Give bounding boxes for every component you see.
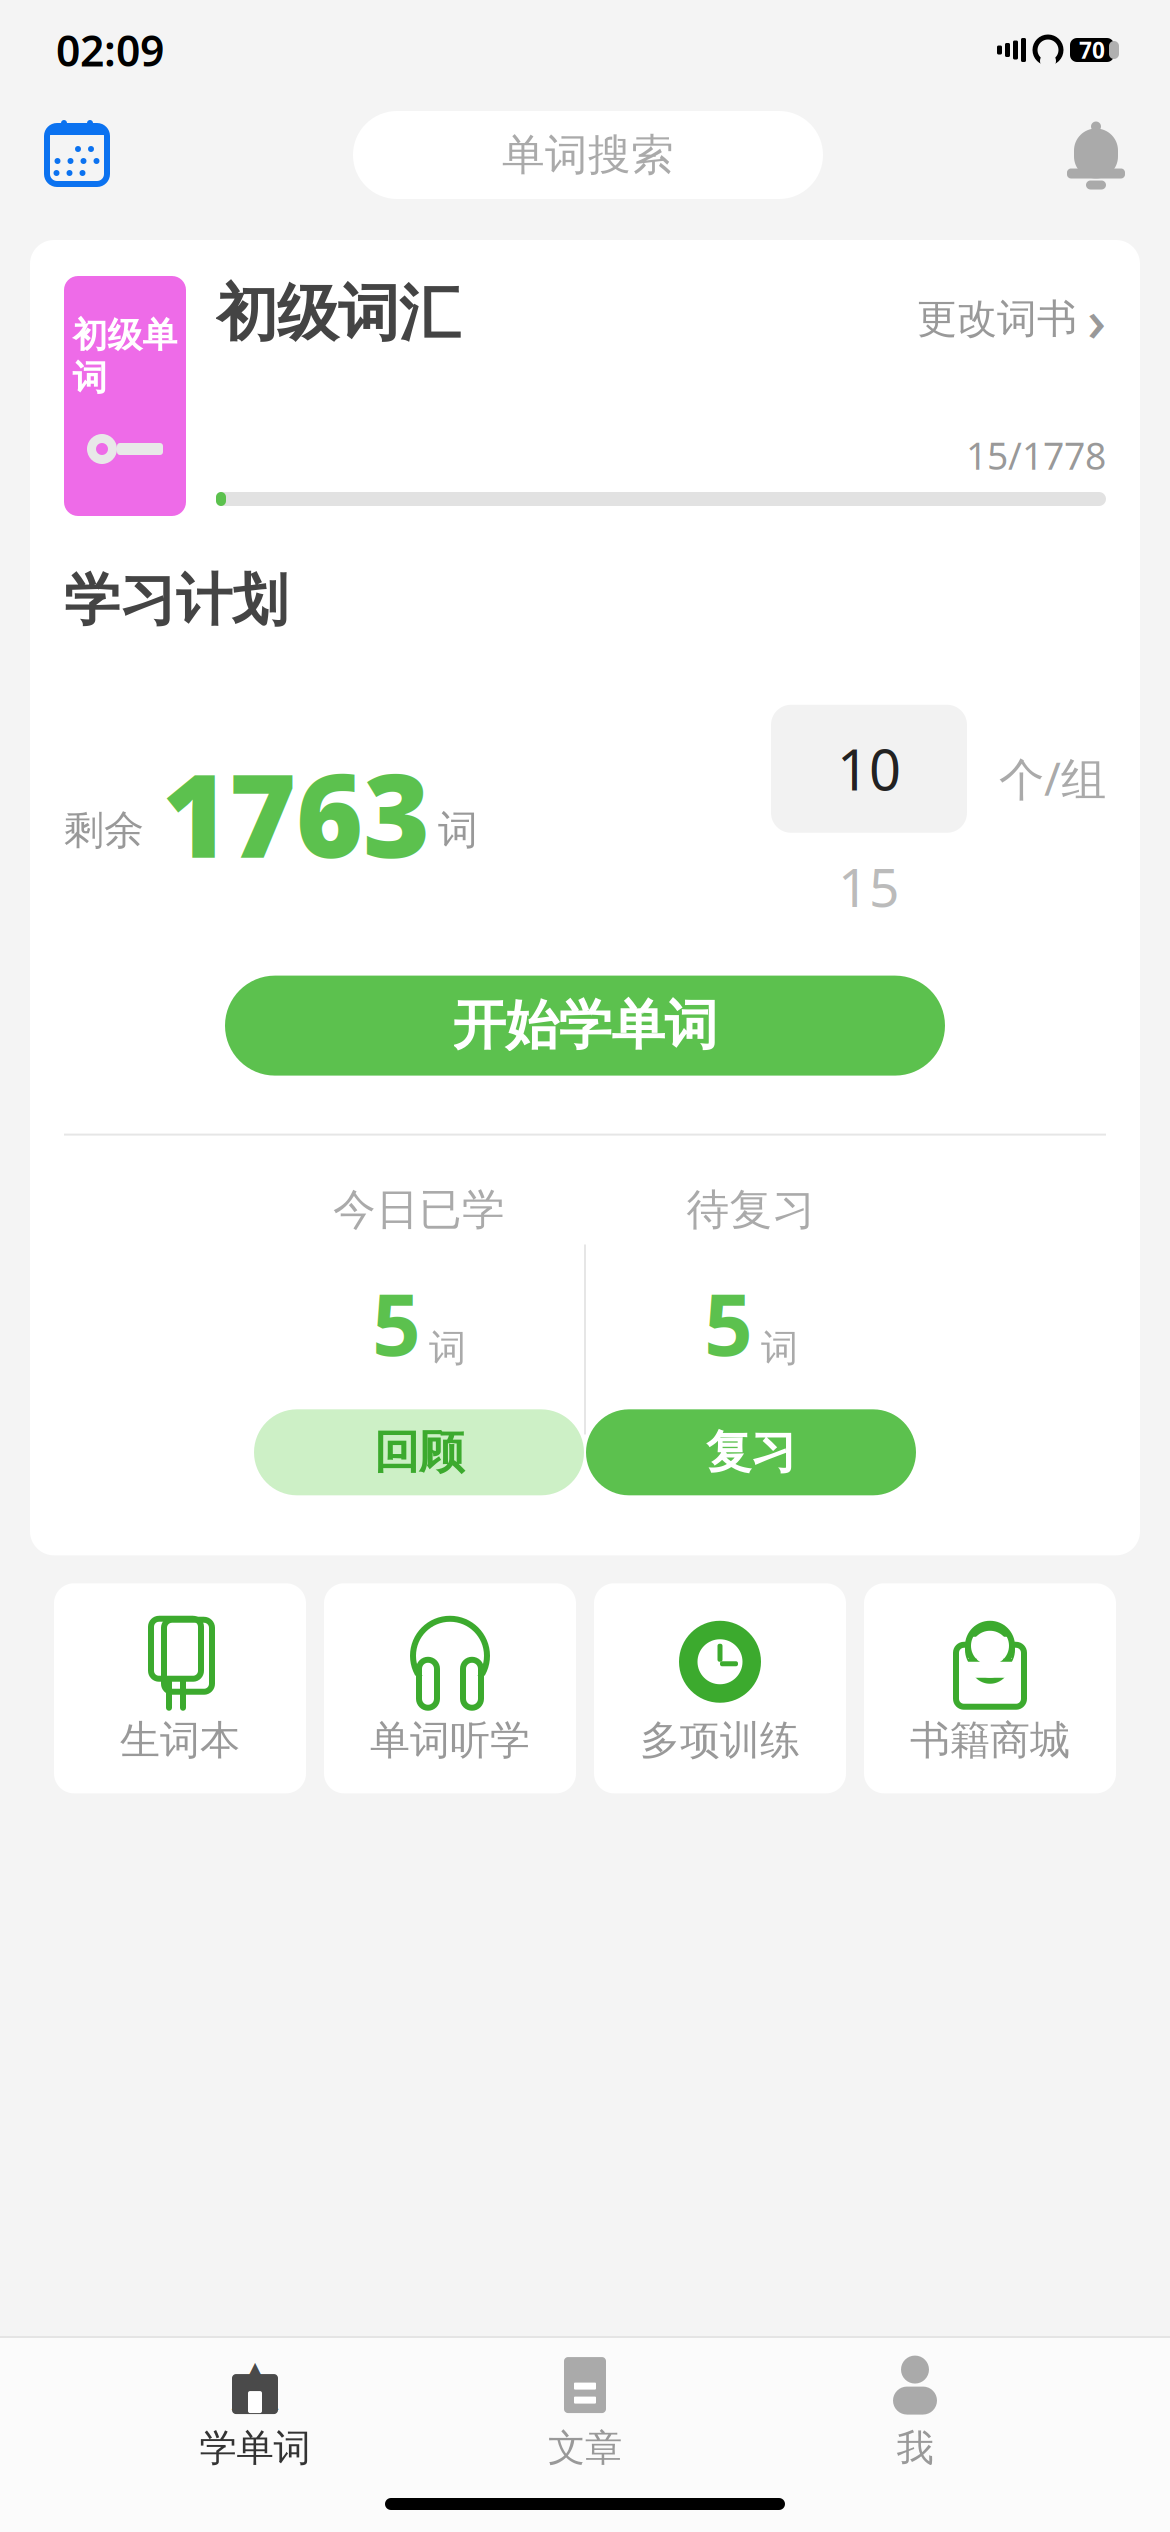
staticText: 剩余 <box>64 806 144 855</box>
staticText: 复习 <box>706 1424 796 1480</box>
staticText: 更改词书 <box>917 294 1077 343</box>
staticText: 词 <box>429 1325 466 1371</box>
staticText: 70 <box>1079 35 1105 65</box>
staticText: 学习计划 <box>64 566 288 635</box>
button[interactable]: 复习 <box>586 1409 916 1495</box>
button[interactable]: 单词搜索 <box>353 111 823 199</box>
staticText: 10 <box>837 732 901 806</box>
staticText: 个/组 <box>999 748 1106 808</box>
staticText: 5 <box>372 1266 421 1379</box>
button[interactable]: ▲ <box>90 2353 420 2473</box>
staticText: 文章 <box>548 2425 622 2471</box>
staticText: 多项训练 <box>640 1716 800 1765</box>
button[interactable]: 多项训练 <box>594 1583 846 1793</box>
button[interactable]: 回顾 <box>254 1409 584 1495</box>
staticText: › <box>1087 280 1106 358</box>
staticText: 词 <box>761 1325 798 1371</box>
staticText: ▲ <box>231 2346 278 2416</box>
staticText: 5 <box>704 1266 753 1379</box>
staticText: 待复习 <box>686 1184 815 1236</box>
staticText: 初级词汇 <box>216 276 460 351</box>
button[interactable]: 书籍商城 <box>864 1583 1116 1793</box>
button[interactable]: 单词听学 <box>324 1583 576 1793</box>
button[interactable]: 开始学单词 <box>225 976 945 1076</box>
staticText: 15 <box>838 851 900 922</box>
staticText: 词 <box>438 806 478 855</box>
staticText: 1763 <box>162 737 430 889</box>
staticText: 书籍商城 <box>910 1716 1070 1765</box>
button[interactable]: 我 <box>750 2353 1080 2473</box>
staticText: 回顾 <box>374 1424 464 1480</box>
staticText: 单词听学 <box>370 1716 530 1765</box>
staticText: 初级单词 <box>72 314 177 399</box>
staticText: 15/1778 <box>966 430 1106 480</box>
staticText: 我 <box>896 2425 933 2471</box>
button[interactable]: 文章 <box>420 2353 750 2473</box>
button[interactable]: 通知 <box>1066 119 1126 191</box>
button[interactable]: 生词本 <box>54 1583 306 1793</box>
staticText: 开始学单词 <box>452 993 717 1058</box>
button[interactable]: 打卡日历 <box>44 120 110 190</box>
staticText: 生词本 <box>120 1716 240 1765</box>
button[interactable]: 更改词书 <box>917 276 1106 358</box>
button[interactable]: 10 <box>771 705 967 833</box>
staticText: 02:09 <box>56 22 164 78</box>
staticText: 今日已学 <box>333 1184 505 1236</box>
staticText: 单词搜索 <box>502 129 674 181</box>
staticText: 学单词 <box>199 2425 310 2471</box>
